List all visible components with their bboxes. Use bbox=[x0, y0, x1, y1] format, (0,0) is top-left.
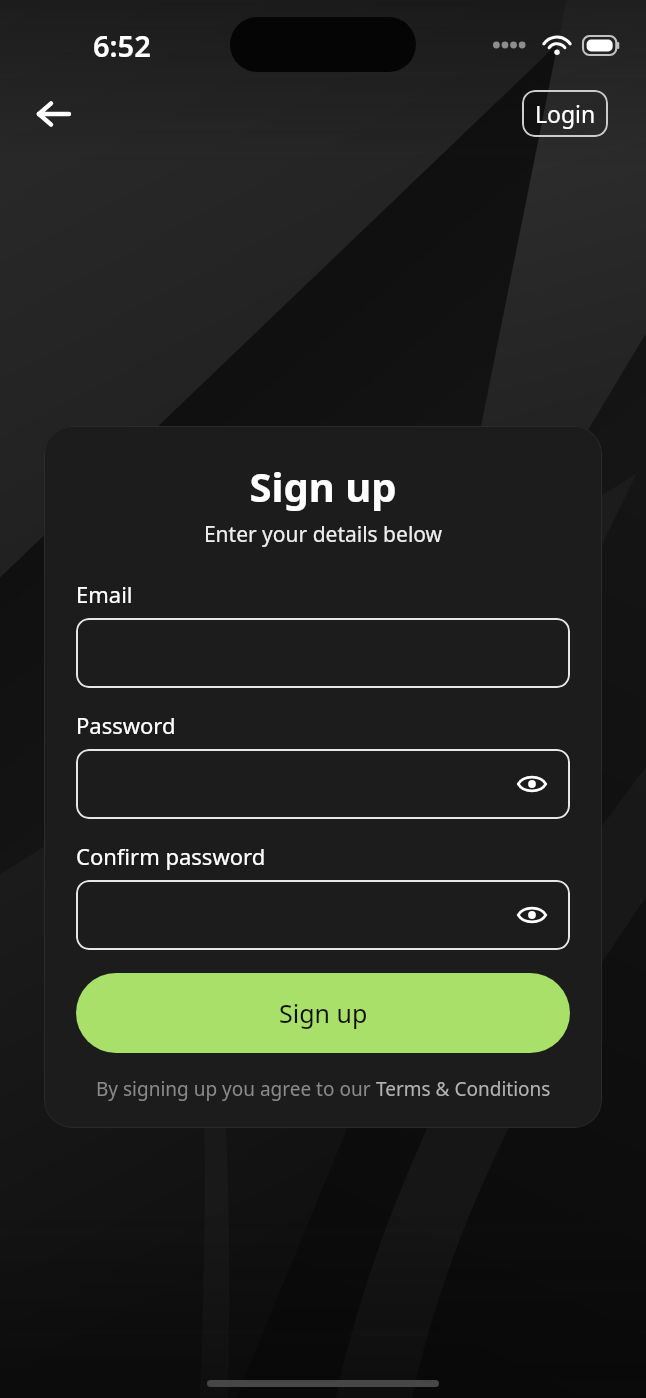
staticText: Password bbox=[76, 710, 176, 740]
button[interactable]: Show Password bbox=[510, 762, 554, 806]
button[interactable]: Back bbox=[28, 89, 78, 139]
staticText: Sign up bbox=[76, 459, 570, 513]
button[interactable]: Sign up bbox=[76, 973, 570, 1053]
button[interactable] bbox=[76, 618, 570, 688]
button[interactable]: By signing up you agree to our bbox=[76, 1076, 570, 1102]
button[interactable]: Show Confirm password bbox=[76, 880, 570, 950]
staticText: By signing up you agree to our bbox=[96, 1076, 376, 1102]
button[interactable]: Login bbox=[522, 90, 608, 137]
staticText: Login bbox=[535, 98, 596, 129]
staticText: Sign up bbox=[279, 996, 368, 1030]
button[interactable]: Show Confirm password bbox=[510, 893, 554, 937]
staticText: 6:52 bbox=[93, 26, 151, 65]
staticText: Confirm password bbox=[76, 841, 266, 871]
staticText: Email bbox=[76, 579, 133, 609]
staticText: Enter your details below bbox=[76, 520, 570, 549]
button[interactable]: Show Password bbox=[76, 749, 570, 819]
staticText: Terms & Conditions bbox=[376, 1076, 551, 1102]
